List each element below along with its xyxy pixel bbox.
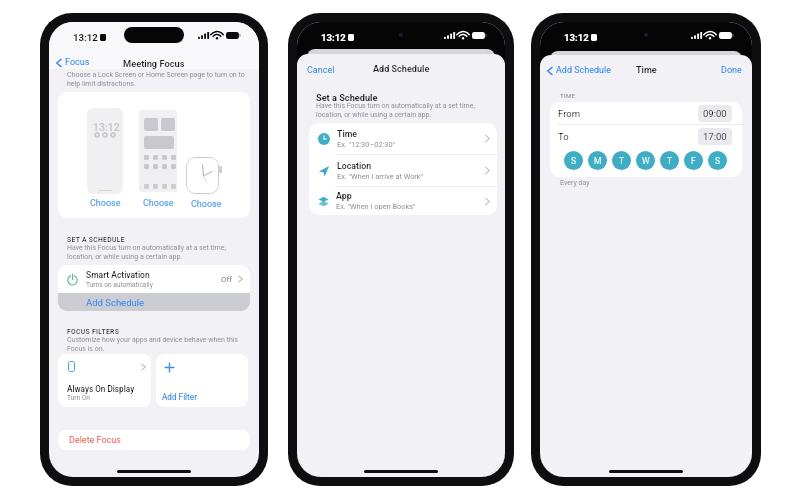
- staticText: Ex. "When I open Books": [336, 202, 416, 211]
- button[interactable]: Cancel: [307, 65, 335, 76]
- button[interactable]: S: [708, 151, 727, 170]
- staticText: S: [571, 156, 577, 166]
- staticText: Meeting Focus: [123, 58, 185, 69]
- staticText: Delete Focus: [69, 435, 121, 446]
- button[interactable]: W: [636, 151, 655, 170]
- staticText: 13:12: [93, 121, 120, 133]
- button[interactable]: Add Schedule: [547, 65, 612, 76]
- staticText: M: [594, 156, 602, 166]
- button[interactable]: F: [684, 151, 703, 170]
- staticText: From: [558, 108, 581, 119]
- staticText: To: [558, 131, 569, 142]
- button[interactable]: To: [550, 125, 742, 147]
- staticText: Every day: [560, 179, 590, 187]
- staticText: Ex. "12:30–02:30": [337, 140, 396, 149]
- staticText: SET A SCHEDULE: [67, 236, 125, 244]
- staticText: 13:12: [321, 32, 346, 43]
- button[interactable]: Time: [309, 123, 497, 154]
- button[interactable]: 13:12: [87, 108, 124, 194]
- button[interactable]: Add Filter: [156, 354, 248, 407]
- staticText: Customize how your apps and device behav…: [67, 336, 239, 353]
- staticText: Choose a Lock Screen or Home Screen page…: [67, 71, 245, 88]
- button[interactable]: T: [612, 151, 631, 170]
- button[interactable]: Add Schedule: [58, 293, 250, 311]
- button[interactable]: M: [588, 151, 607, 170]
- staticText: Set a Schedule: [316, 92, 378, 103]
- staticText: T: [667, 156, 673, 166]
- button[interactable]: Always On Display: [58, 354, 151, 407]
- staticText: Always On Display: [67, 384, 135, 394]
- staticText: Choose: [191, 199, 222, 210]
- button[interactable]: Choose: [139, 110, 177, 192]
- staticText: Have this Focus turn on automatically at…: [67, 244, 226, 261]
- staticText: Have this Focus turn on automatically at…: [316, 102, 475, 119]
- button[interactable]: S: [564, 151, 583, 170]
- staticText: Time: [337, 129, 358, 139]
- button[interactable]: Delete Focus: [58, 430, 250, 450]
- staticText: 13:12: [73, 32, 98, 43]
- staticText: Smart Activation: [86, 270, 150, 280]
- staticText: App: [336, 191, 352, 201]
- staticText: Add Schedule: [86, 297, 145, 308]
- button[interactable]: Choose: [186, 157, 226, 199]
- staticText: 17:00: [703, 131, 727, 142]
- staticText: W: [642, 156, 650, 166]
- staticText: FOCUS FILTERS: [67, 328, 120, 336]
- staticText: Turn On: [67, 394, 90, 402]
- button[interactable]: Smart Activation: [58, 265, 250, 293]
- staticText: T: [619, 156, 625, 166]
- staticText: F: [691, 156, 696, 166]
- button[interactable]: From: [550, 102, 742, 124]
- staticText: Turns on automatically: [86, 281, 153, 289]
- staticText: Choose: [90, 198, 121, 209]
- button[interactable]: App: [309, 187, 497, 215]
- staticText: Choose: [143, 198, 174, 209]
- button[interactable]: Done: [721, 65, 742, 76]
- staticText: Add Schedule: [373, 64, 430, 75]
- button[interactable]: Location: [309, 155, 497, 186]
- staticText: Off: [221, 275, 233, 284]
- button[interactable]: T: [660, 151, 679, 170]
- staticText: 09:00: [703, 108, 727, 119]
- staticText: TIME: [560, 92, 576, 99]
- staticText: Add Filter: [162, 392, 197, 402]
- staticText: Location: [337, 161, 372, 171]
- button[interactable]: Focus: [56, 57, 90, 68]
- staticText: 13:12: [564, 32, 589, 43]
- staticText: Focus: [65, 57, 90, 68]
- staticText: Time: [636, 65, 657, 76]
- staticText: Ex. "When I arrive at Work": [337, 172, 423, 181]
- staticText: S: [715, 156, 721, 166]
- staticText: Add Schedule: [556, 65, 612, 76]
